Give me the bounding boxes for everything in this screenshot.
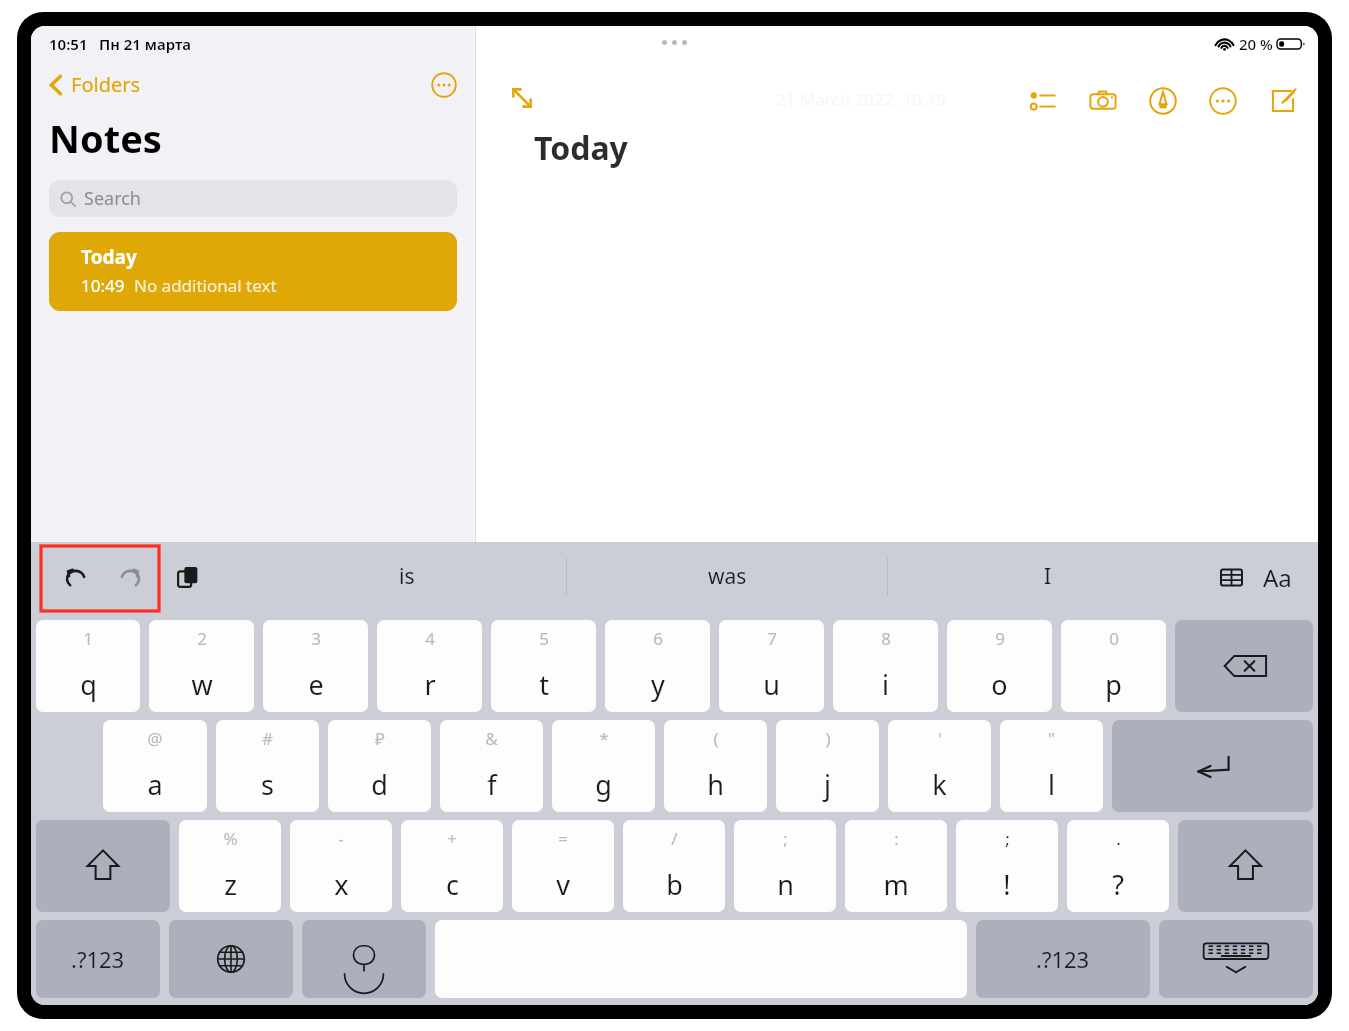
staticText: g [595, 766, 612, 803]
button[interactable]: 3 [263, 620, 368, 712]
staticText: Aa [1263, 561, 1292, 594]
button[interactable]: 1 [36, 620, 140, 712]
button[interactable]: Checklist [1024, 82, 1062, 120]
staticText: 10:51 [49, 34, 88, 54]
button[interactable]: ; [734, 820, 836, 912]
button[interactable]: Backspace [1175, 620, 1313, 712]
staticText: % [223, 827, 238, 850]
button[interactable]: * [552, 720, 655, 812]
staticText: Folders [71, 71, 141, 98]
staticText: k [932, 766, 947, 803]
staticText: t [539, 666, 549, 703]
button[interactable]: : [845, 820, 947, 912]
staticText: Search [84, 186, 141, 211]
button[interactable]: Change keyboard [169, 920, 293, 998]
button[interactable]: Redo [107, 554, 153, 600]
button[interactable]: More options [429, 70, 459, 100]
staticText: ₽ [375, 727, 385, 750]
button[interactable]: Insert table [1208, 554, 1254, 600]
button[interactable]: 9 [947, 620, 1052, 712]
staticText: Today [534, 126, 628, 170]
button[interactable]: More [1204, 82, 1242, 120]
staticText: was [708, 562, 747, 591]
button[interactable]: 8 [833, 620, 938, 712]
button[interactable]: " [1000, 720, 1103, 812]
button[interactable]: 0 [1061, 620, 1166, 712]
button[interactable]: Camera [1084, 82, 1122, 120]
staticText: 0 [1109, 627, 1119, 650]
staticText: No additional text [134, 274, 277, 297]
staticText: . [1116, 827, 1121, 850]
staticText: Пн 21 марта [99, 34, 191, 54]
button[interactable]: Folders [45, 67, 145, 102]
button[interactable]: 5 [491, 620, 596, 712]
button[interactable]: Shift [36, 820, 170, 912]
button[interactable]: Hide keyboard [1159, 920, 1313, 998]
button[interactable]: 4 [377, 620, 482, 712]
staticText: ! [1003, 866, 1011, 903]
staticText: ? [1112, 866, 1124, 903]
staticText: q [80, 666, 97, 703]
staticText: w [191, 666, 213, 703]
staticText: i [882, 666, 889, 703]
button[interactable]: Text formatting [1254, 554, 1300, 600]
button[interactable]: 7 [719, 620, 824, 712]
staticText: e [308, 666, 324, 703]
button[interactable]: ; [956, 820, 1058, 912]
button[interactable]: - [290, 820, 392, 912]
button[interactable]: Shift [1178, 820, 1313, 912]
staticText: m [883, 866, 909, 903]
button[interactable]: 2 [149, 620, 254, 712]
button[interactable]: . [1067, 820, 1169, 912]
button[interactable]: Today [49, 232, 457, 311]
button[interactable]: Undo [53, 554, 99, 600]
staticText: l [1048, 766, 1055, 803]
button[interactable]: Paste [165, 554, 211, 600]
staticText: c [446, 866, 459, 903]
staticText: ' [938, 727, 942, 750]
button[interactable]: Search [49, 180, 457, 217]
button[interactable]: ' [888, 720, 991, 812]
button[interactable]: .?123 [36, 920, 160, 998]
staticText: ; [783, 827, 788, 850]
button[interactable]: + [401, 820, 503, 912]
staticText: x [334, 866, 349, 903]
staticText: z [224, 866, 237, 903]
staticText: n [777, 866, 794, 903]
button[interactable]: Markup [1144, 82, 1182, 120]
button[interactable]: ) [776, 720, 879, 812]
button[interactable]: Return [1112, 720, 1313, 812]
staticText: v [556, 866, 570, 903]
button[interactable]: = [512, 820, 614, 912]
staticText: 6 [653, 627, 663, 650]
staticText: = [558, 827, 568, 850]
button[interactable]: was [567, 542, 887, 611]
button[interactable]: @ [103, 720, 207, 812]
staticText: / [671, 827, 678, 850]
button[interactable]: 6 [605, 620, 710, 712]
staticText: # [262, 727, 273, 750]
staticText: 8 [881, 627, 891, 650]
button[interactable]: ₽ [328, 720, 431, 812]
staticText: r [424, 666, 436, 703]
button[interactable]: # [216, 720, 319, 812]
staticText: 9 [995, 627, 1005, 650]
button[interactable]: .?123 [976, 920, 1150, 998]
staticText: 7 [767, 627, 777, 650]
button[interactable]: / [623, 820, 725, 912]
staticText: I [1044, 562, 1052, 591]
button[interactable]: Expand [504, 80, 540, 116]
staticText: ) [825, 727, 831, 750]
staticText: u [763, 666, 780, 703]
staticText: Notes [49, 112, 162, 164]
button[interactable]: ( [664, 720, 767, 812]
button[interactable]: I [888, 542, 1208, 611]
button[interactable]: & [440, 720, 543, 812]
button[interactable]: Compose [1264, 82, 1302, 120]
button[interactable]: % [179, 820, 281, 912]
button[interactable]: is [247, 542, 566, 611]
button[interactable]: Dictation [302, 920, 426, 998]
staticText: b [666, 866, 683, 903]
staticText: j [824, 766, 831, 803]
